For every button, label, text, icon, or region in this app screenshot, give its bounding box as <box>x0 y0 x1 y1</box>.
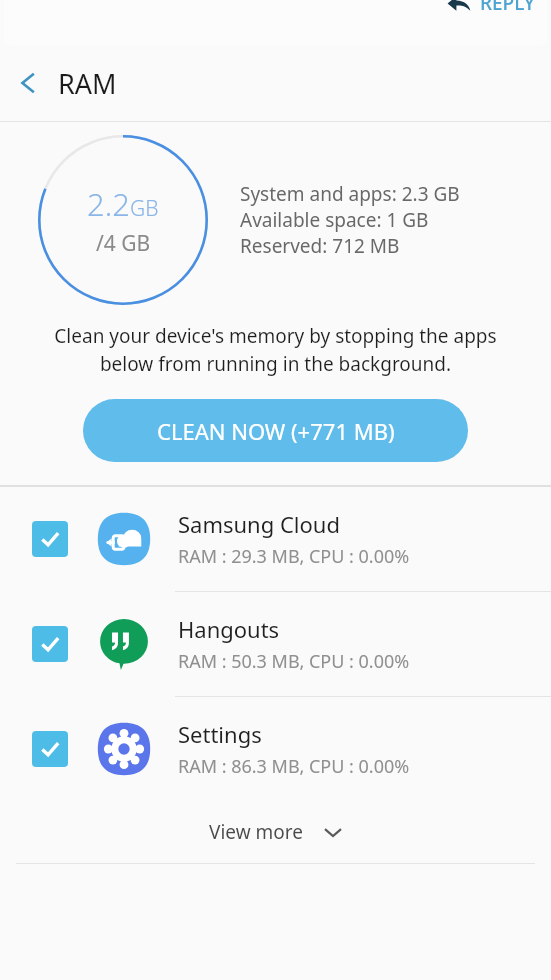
button[interactable]: Select Samsung Cloud <box>32 521 68 557</box>
staticText: RAM : 50.3 MB, CPU : 0.00% <box>178 649 410 674</box>
staticText: View more <box>209 819 303 845</box>
staticText: Reserved: 712 MB <box>240 233 400 259</box>
button[interactable]: Select Settings <box>32 731 68 767</box>
button[interactable]: CLEAN NOW (+771 MB) <box>83 399 468 462</box>
staticText: /4 GB <box>96 229 151 258</box>
button[interactable]: Select Settings <box>0 697 551 801</box>
staticText: Clean your device's memory by stopping t… <box>42 323 509 377</box>
other: Expand <box>323 822 343 842</box>
button[interactable]: Select Hangouts <box>0 592 551 696</box>
button[interactable]: Select Hangouts <box>32 626 68 662</box>
staticText: RAM : 29.3 MB, CPU : 0.00% <box>178 544 410 569</box>
staticText: 2.2GB <box>87 183 159 225</box>
button[interactable]: Back <box>0 54 58 112</box>
staticText: Available space: 1 GB <box>240 207 429 233</box>
staticText: Samsung Cloud <box>178 509 340 539</box>
button[interactable]: Select Samsung Cloud <box>0 487 551 591</box>
staticText: REPLY <box>480 0 535 16</box>
staticText: Hangouts <box>178 614 280 644</box>
staticText: RAM <box>58 65 117 102</box>
staticText: System and apps: 2.3 GB <box>240 181 460 207</box>
button[interactable]: Reply <box>434 0 547 20</box>
button[interactable]: View more <box>0 801 551 863</box>
other: Reply <box>446 0 472 16</box>
staticText: RAM : 86.3 MB, CPU : 0.00% <box>178 754 410 779</box>
staticText: CLEAN NOW (+771 MB) <box>157 416 395 446</box>
staticText: Settings <box>178 719 262 749</box>
